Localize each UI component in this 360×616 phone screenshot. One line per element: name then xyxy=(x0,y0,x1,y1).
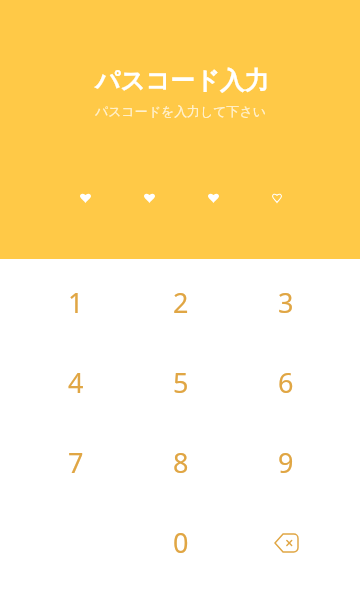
staticText: 3 xyxy=(278,284,294,321)
button[interactable]: 4 xyxy=(23,342,128,422)
button[interactable]: Delete xyxy=(233,502,338,582)
button[interactable]: 1 xyxy=(23,262,128,342)
staticText: 5 xyxy=(173,364,189,401)
staticText: 2 xyxy=(173,284,189,321)
staticText: 8 xyxy=(173,444,189,481)
other: Passcode progress xyxy=(1,188,360,208)
staticText: 1 xyxy=(68,284,84,321)
button[interactable]: 7 xyxy=(23,422,128,502)
staticText: 4 xyxy=(68,364,84,401)
staticText: 0 xyxy=(173,524,189,561)
button[interactable]: 5 xyxy=(128,342,233,422)
button[interactable]: 6 xyxy=(233,342,338,422)
button[interactable]: 9 xyxy=(233,422,338,502)
button[interactable]: 2 xyxy=(128,262,233,342)
staticText: パスコード入力 xyxy=(95,65,269,96)
staticText: 9 xyxy=(278,444,294,481)
staticText: パスコードを入力して下さい xyxy=(95,104,266,120)
button[interactable]: 3 xyxy=(233,262,338,342)
staticText: 7 xyxy=(68,444,84,481)
button[interactable]: 0 xyxy=(128,502,233,582)
button[interactable]: 8 xyxy=(128,422,233,502)
staticText: 6 xyxy=(278,364,294,401)
